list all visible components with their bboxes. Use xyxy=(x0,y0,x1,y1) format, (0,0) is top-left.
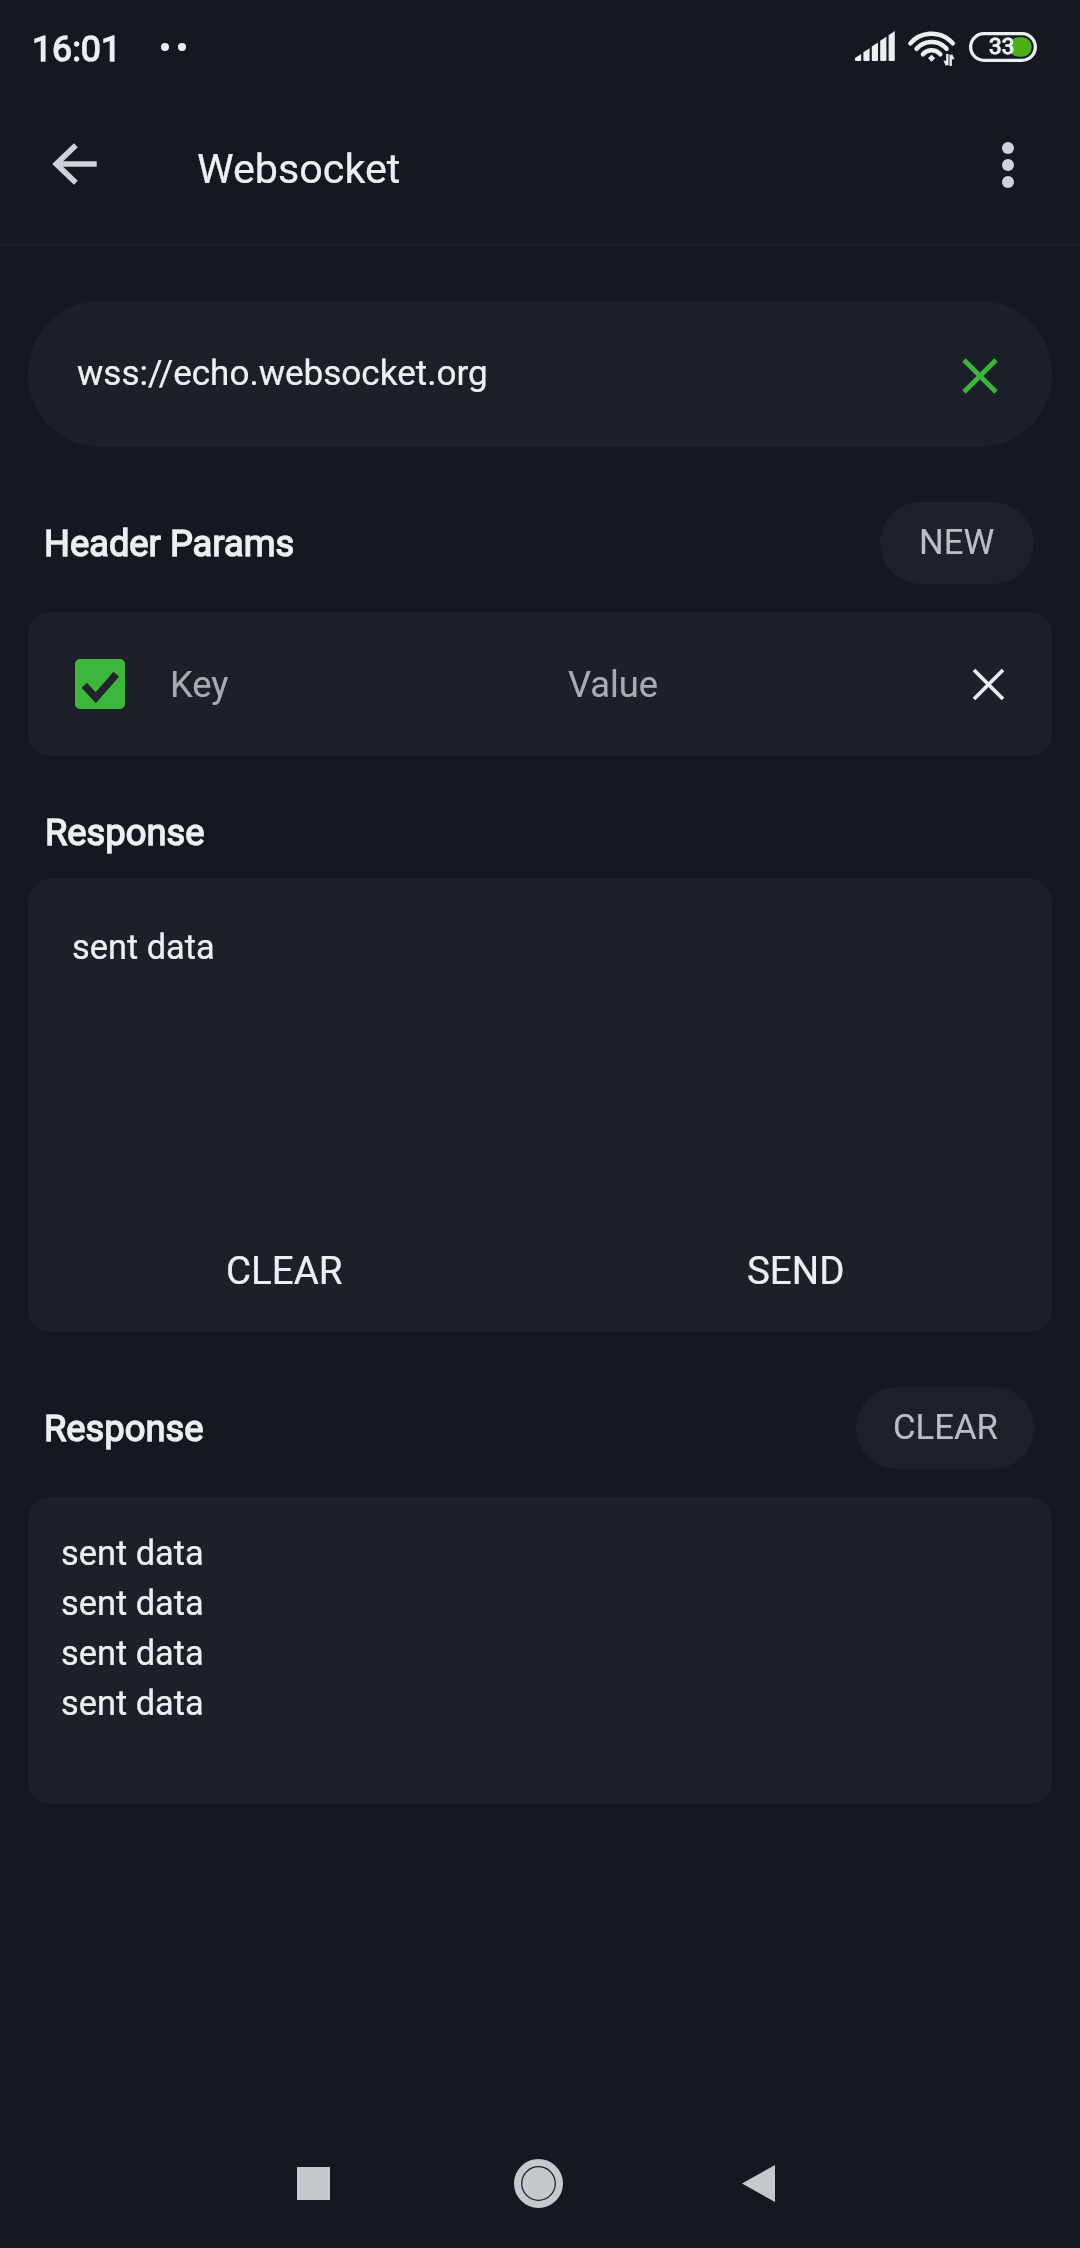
staticText: 33 xyxy=(989,33,1015,59)
staticText: Response xyxy=(45,811,205,854)
button[interactable]: NEW xyxy=(880,502,1034,584)
staticText: NEW xyxy=(919,522,995,563)
button[interactable]: Recent apps xyxy=(258,2128,368,2238)
button[interactable]: CLEAR xyxy=(856,1387,1034,1469)
staticText: 16:01 xyxy=(32,28,122,70)
button[interactable]: More options xyxy=(953,110,1063,220)
button[interactable]: SEND xyxy=(540,1220,1052,1320)
button[interactable]: CLEAR xyxy=(28,1220,540,1320)
button[interactable]: Clear url xyxy=(930,326,1030,426)
staticText: sent data xyxy=(61,1533,204,1573)
staticText: SEND xyxy=(747,1248,845,1293)
staticText: Response xyxy=(44,1407,204,1450)
button[interactable]: wss://echo.websocket.org xyxy=(28,301,1052,447)
button[interactable]: Back xyxy=(703,2128,813,2238)
staticText: sent data xyxy=(72,927,215,967)
staticText: Websocket xyxy=(197,145,401,193)
button[interactable]: Home xyxy=(483,2128,593,2238)
staticText: CLEAR xyxy=(893,1407,998,1448)
staticText: CLEAR xyxy=(226,1248,343,1293)
staticText: sent data xyxy=(61,1683,204,1723)
button[interactable]: Remove header xyxy=(938,634,1038,734)
button[interactable]: Back xyxy=(20,109,130,219)
button[interactable]: Enabled xyxy=(75,659,125,709)
staticText: sent data xyxy=(61,1633,204,1673)
staticText: sent data xyxy=(61,1583,204,1623)
staticText: wss://echo.websocket.org xyxy=(77,352,488,393)
staticText: Header Params xyxy=(44,522,295,565)
staticText: Key xyxy=(170,663,229,706)
staticText: Value xyxy=(568,663,659,706)
